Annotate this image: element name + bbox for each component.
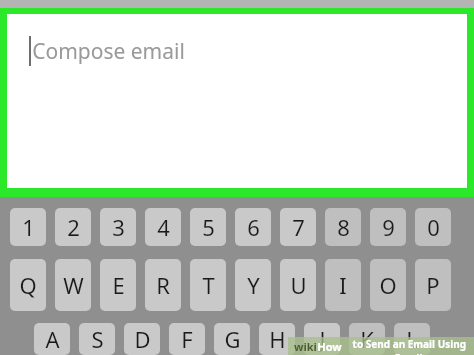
- staticText: A: [45, 324, 60, 354]
- staticText: 3: [112, 212, 125, 242]
- button[interactable]: 9: [370, 208, 406, 246]
- staticText: W: [63, 270, 84, 300]
- button[interactable]: A: [34, 323, 70, 355]
- button[interactable]: I: [325, 259, 361, 311]
- staticText: Compose email: [32, 37, 185, 66]
- staticText: 7: [292, 212, 305, 242]
- staticText: 8: [337, 212, 350, 242]
- button[interactable]: 5: [190, 208, 226, 246]
- button[interactable]: Y: [235, 259, 271, 311]
- button[interactable]: G: [214, 323, 250, 355]
- button[interactable]: 0: [415, 208, 451, 246]
- staticText: E: [112, 270, 125, 300]
- staticText: 4: [157, 212, 170, 242]
- button[interactable]: 6: [235, 208, 271, 246]
- staticText: 1: [22, 212, 35, 242]
- button[interactable]: 3: [100, 208, 136, 246]
- button[interactable]: L: [394, 323, 430, 355]
- staticText: I: [339, 270, 347, 300]
- staticText: D: [134, 324, 151, 354]
- button[interactable]: F: [169, 323, 205, 355]
- staticText: T: [202, 270, 215, 300]
- staticText: J: [319, 324, 326, 354]
- button[interactable]: 7: [280, 208, 316, 246]
- staticText: P: [426, 270, 440, 300]
- button[interactable]: D: [124, 323, 160, 355]
- button[interactable]: S: [79, 323, 115, 355]
- button[interactable]: K: [349, 323, 385, 355]
- button[interactable]: P: [415, 259, 451, 311]
- button[interactable]: U: [280, 259, 316, 311]
- staticText: 5: [202, 212, 215, 242]
- staticText: 9: [382, 212, 395, 242]
- staticText: G: [224, 324, 241, 354]
- staticText: 0: [427, 212, 440, 242]
- button[interactable]: R: [145, 259, 181, 311]
- staticText: L: [406, 324, 418, 354]
- staticText: 6: [247, 212, 260, 242]
- staticText: to Send an Email Using Gmail: [342, 337, 474, 355]
- staticText: wiki: [294, 339, 317, 354]
- button[interactable]: H: [259, 323, 295, 355]
- button[interactable]: T: [190, 259, 226, 311]
- button[interactable]: Compose email: [7, 14, 467, 188]
- button[interactable]: 4: [145, 208, 181, 246]
- button[interactable]: 8: [325, 208, 361, 246]
- staticText: 2: [67, 212, 80, 242]
- staticText: K: [360, 324, 374, 354]
- staticText: H: [269, 324, 286, 354]
- staticText: Y: [247, 270, 260, 300]
- button[interactable]: O: [370, 259, 406, 311]
- button[interactable]: Q: [10, 259, 46, 311]
- staticText: O: [379, 270, 397, 300]
- staticText: U: [290, 270, 307, 300]
- staticText: Q: [19, 270, 37, 300]
- button[interactable]: 1: [10, 208, 46, 246]
- staticText: How: [317, 339, 342, 354]
- staticText: R: [156, 270, 170, 300]
- button[interactable]: 2: [55, 208, 91, 246]
- staticText: F: [181, 324, 193, 354]
- button[interactable]: E: [100, 259, 136, 311]
- staticText: S: [91, 324, 104, 354]
- button[interactable]: J: [304, 323, 340, 355]
- button[interactable]: W: [55, 259, 91, 311]
